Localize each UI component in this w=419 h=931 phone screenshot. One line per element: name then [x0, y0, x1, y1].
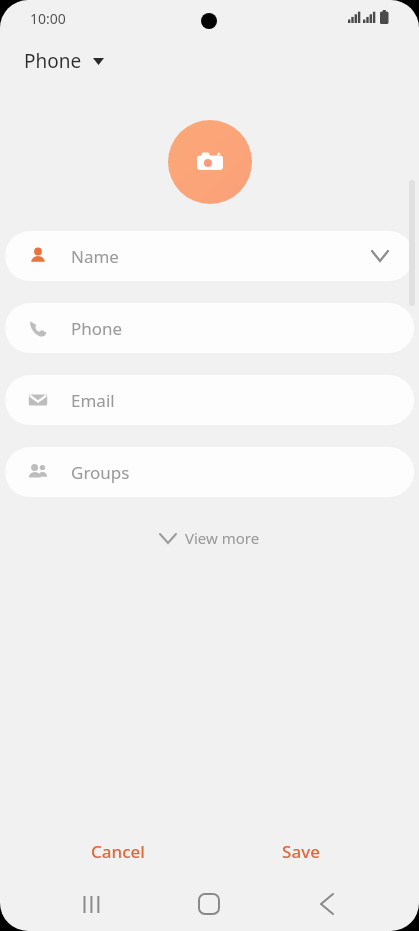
staticText: Email [71, 389, 115, 412]
button[interactable]: Home [179, 882, 239, 926]
staticText: View more [185, 528, 260, 548]
button[interactable]: Back [297, 882, 357, 926]
staticText: Phone [71, 317, 123, 340]
button[interactable]: Phone [5, 303, 414, 353]
button[interactable]: Name [5, 231, 414, 281]
button[interactable]: Recents [62, 882, 122, 926]
button[interactable]: Phone [18, 44, 110, 78]
staticText: Name [71, 245, 119, 268]
button[interactable]: View more [150, 522, 270, 554]
button[interactable]: Add photo [168, 120, 252, 204]
staticText: Phone [24, 48, 82, 74]
button[interactable]: Cancel [62, 832, 174, 870]
staticText: Cancel [91, 840, 145, 863]
staticText: Groups [71, 461, 130, 484]
staticText: 10:00 [30, 9, 66, 28]
staticText: Save [282, 840, 320, 863]
button[interactable]: Groups [5, 447, 414, 497]
button[interactable]: Email [5, 375, 414, 425]
button[interactable]: Save [245, 832, 357, 870]
